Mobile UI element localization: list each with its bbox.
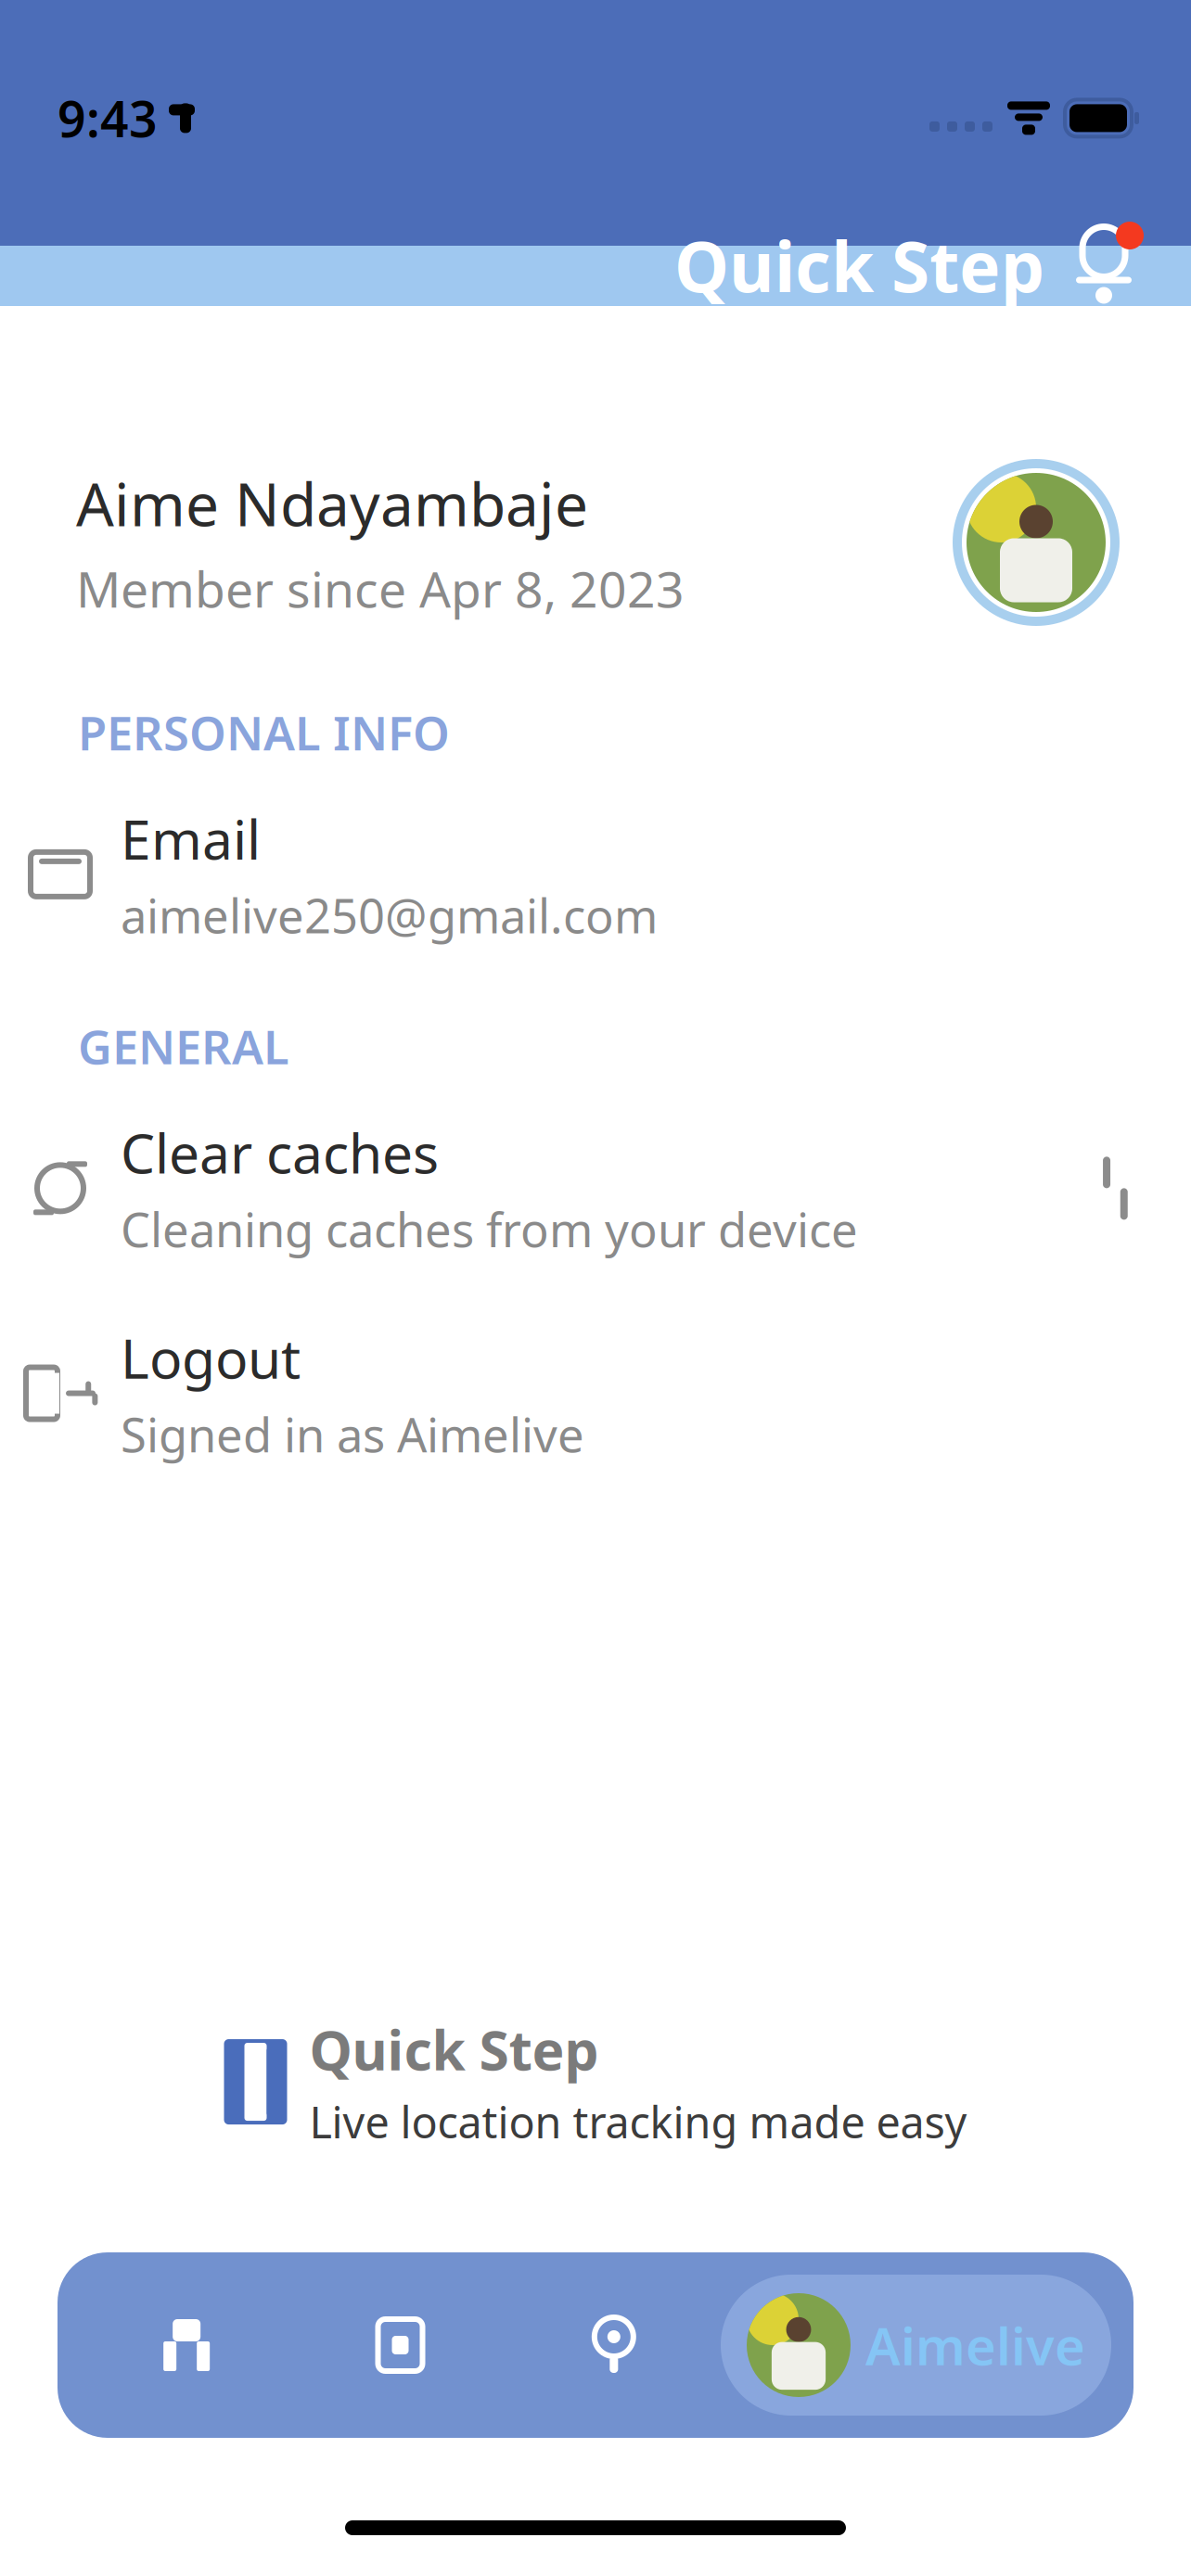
staticText: PERSONAL INFO	[78, 701, 450, 763]
button[interactable]: Aimelive	[721, 2275, 1111, 2416]
staticText: GENERAL	[78, 1015, 289, 1077]
staticText: Cleaning caches from your device	[121, 1198, 858, 1260]
button[interactable]: Notifications	[1059, 219, 1148, 312]
staticText: Quick Step	[674, 219, 1044, 311]
staticText: Member since Apr 8, 2023	[76, 556, 685, 621]
staticText: aimelive250@gmail.com	[121, 884, 658, 946]
staticText: Email	[121, 802, 261, 875]
button[interactable]: Clear caches	[0, 1101, 1191, 1275]
staticText: Aimelive	[865, 2311, 1085, 2380]
staticText: Signed in as Aimelive	[121, 1403, 584, 1465]
button[interactable]: Logout	[0, 1307, 1191, 1480]
staticText: Logout	[121, 1321, 301, 1394]
staticText: Aime Ndayambaje	[76, 464, 588, 543]
staticText: Clear caches	[121, 1116, 439, 1189]
button[interactable]: Location	[507, 2317, 721, 2373]
staticText: 9:43	[58, 85, 158, 151]
button[interactable]: Email	[0, 788, 1191, 961]
button[interactable]: Tickets	[293, 2317, 507, 2373]
staticText: Quick Step	[309, 2013, 599, 2085]
staticText: Live location tracking made easy	[309, 2093, 967, 2150]
button[interactable]: Home	[80, 2317, 293, 2373]
